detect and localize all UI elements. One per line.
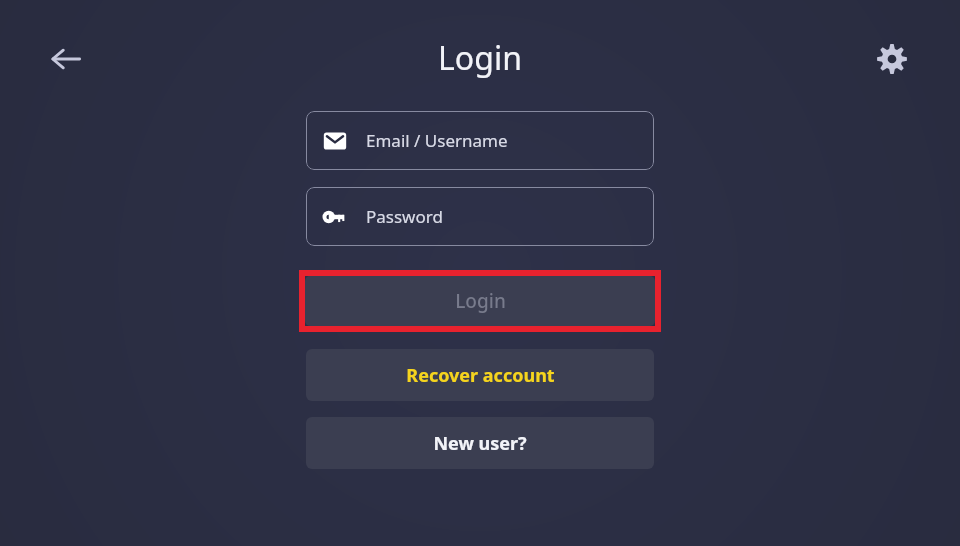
staticText: Password <box>366 205 443 228</box>
button[interactable]: New user? <box>306 417 654 469</box>
button[interactable]: Email / Username <box>306 111 654 170</box>
staticText: Email / Username <box>366 129 508 152</box>
button[interactable]: Back <box>38 31 94 87</box>
button[interactable]: Settings <box>866 33 918 85</box>
button[interactable]: Password <box>306 187 654 246</box>
staticText: Login <box>455 288 506 314</box>
button[interactable]: Login <box>305 276 655 326</box>
staticText: New user? <box>433 431 527 456</box>
staticText: Recover account <box>406 363 555 388</box>
staticText: Login <box>438 36 522 80</box>
button[interactable]: Recover account <box>306 349 654 401</box>
